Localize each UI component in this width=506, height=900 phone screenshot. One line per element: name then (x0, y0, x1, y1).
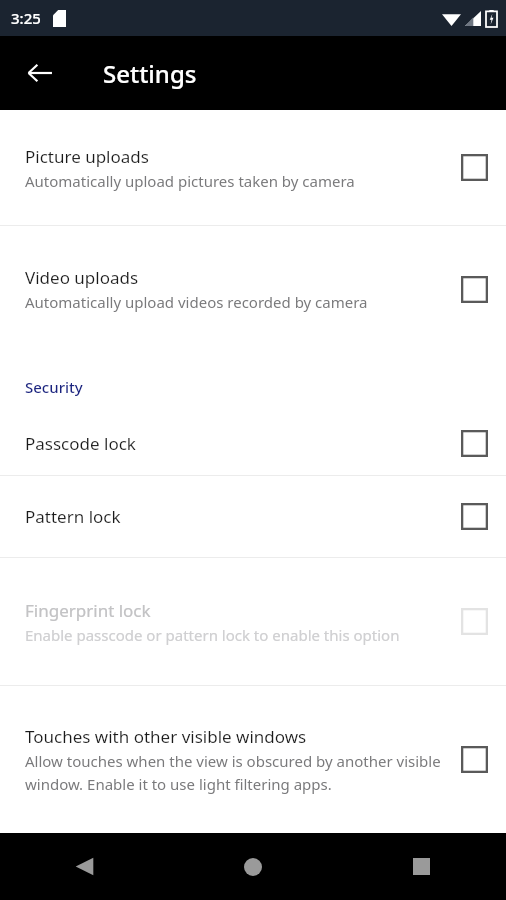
staticText: Video uploads (25, 266, 139, 289)
button[interactable]: Video uploads (0, 226, 506, 352)
staticText: Pattern lock (25, 505, 121, 528)
staticText: Picture uploads (25, 145, 149, 168)
staticText: Security (25, 377, 83, 397)
button[interactable]: Pattern lock (0, 476, 506, 557)
staticText: Allow touches when the view is obscured … (25, 751, 447, 794)
button[interactable]: Picture uploads (0, 110, 506, 225)
other: Checkbox (461, 746, 488, 773)
staticText: Automatically upload pictures taken by c… (25, 171, 355, 191)
button[interactable]: Touches with other visible windows (0, 686, 506, 833)
button[interactable]: Recent apps (337, 833, 506, 900)
button[interactable]: Home (168, 833, 337, 900)
staticText: Touches with other visible windows (25, 725, 307, 748)
staticText: Automatically upload videos recorded by … (25, 292, 368, 312)
other: Checkbox disabled (461, 608, 488, 635)
other: Checkbox (461, 276, 488, 303)
staticText: Settings (103, 57, 197, 90)
staticText: Passcode lock (25, 432, 136, 455)
other: Checkbox (461, 430, 488, 457)
button[interactable]: Passcode lock (0, 412, 506, 475)
staticText: 3:25 (11, 8, 41, 28)
other: Checkbox (461, 154, 488, 181)
staticText: Enable passcode or pattern lock to enabl… (25, 625, 400, 645)
button[interactable]: Back (0, 833, 168, 900)
other: Checkbox (461, 503, 488, 530)
staticText: Fingerprint lock (25, 599, 151, 622)
button[interactable]: Navigate up (16, 49, 64, 97)
button[interactable]: Fingerprint lock (0, 558, 506, 685)
